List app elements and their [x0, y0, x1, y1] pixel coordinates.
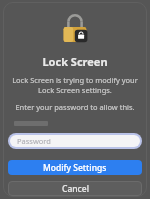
staticText: Cancel — [62, 183, 89, 195]
button[interactable]: Password — [10, 135, 140, 147]
button[interactable] — [8, 118, 142, 129]
button[interactable]: Cancel — [8, 181, 142, 196]
staticText: Lock Screen is trying to modify your Loc… — [12, 75, 138, 95]
staticText: Enter your password to allow this. — [8, 102, 142, 112]
button[interactable]: Modify Settings — [8, 160, 142, 175]
staticText: Password — [17, 136, 51, 146]
other: Lock Screen — [60, 13, 90, 45]
staticText: Lock Screen — [42, 54, 108, 69]
staticText: Modify Settings — [43, 162, 107, 174]
